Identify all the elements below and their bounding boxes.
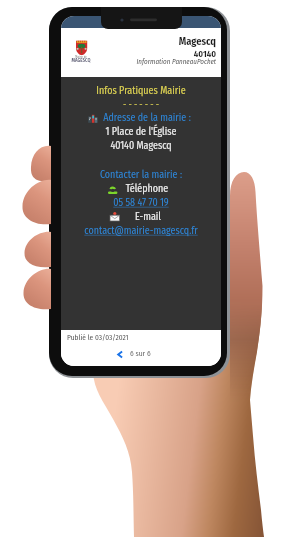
staticText: Magescq (61, 35, 216, 47)
button[interactable]: Page précédente (61, 345, 221, 366)
staticText: Publié le 03/03/2021 (67, 333, 129, 342)
staticText: MAGESCQ (65, 58, 97, 64)
staticText: Mairie de (68, 55, 94, 59)
staticText: 1 Place de l'Église (61, 126, 221, 138)
staticText: E-mail (68, 211, 221, 223)
staticText: Adresse de la mairie : (67, 112, 221, 124)
staticText: 6 sur 6 (130, 349, 151, 358)
staticText: 40140 (61, 49, 216, 60)
staticText: - - - - - - - (61, 99, 221, 110)
staticText: 05 58 47 70 19 (61, 197, 221, 209)
other: Page précédente (117, 351, 123, 358)
staticText: Téléphone (67, 183, 221, 195)
staticText: Infos Pratiques Mairie (61, 85, 221, 97)
staticText: Information PanneauPocket (61, 57, 216, 65)
staticText: 40140 Magescq (61, 140, 221, 152)
staticText: contact@mairie-magescq.fr (61, 225, 221, 237)
staticText: Contacter la mairie : (61, 169, 221, 181)
